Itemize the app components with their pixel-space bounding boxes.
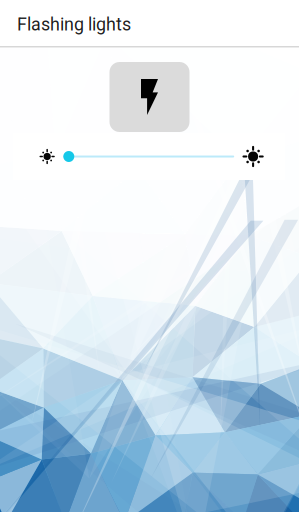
button[interactable]: Flashlight	[109, 62, 189, 132]
staticText: Flashing lights	[17, 14, 131, 35]
